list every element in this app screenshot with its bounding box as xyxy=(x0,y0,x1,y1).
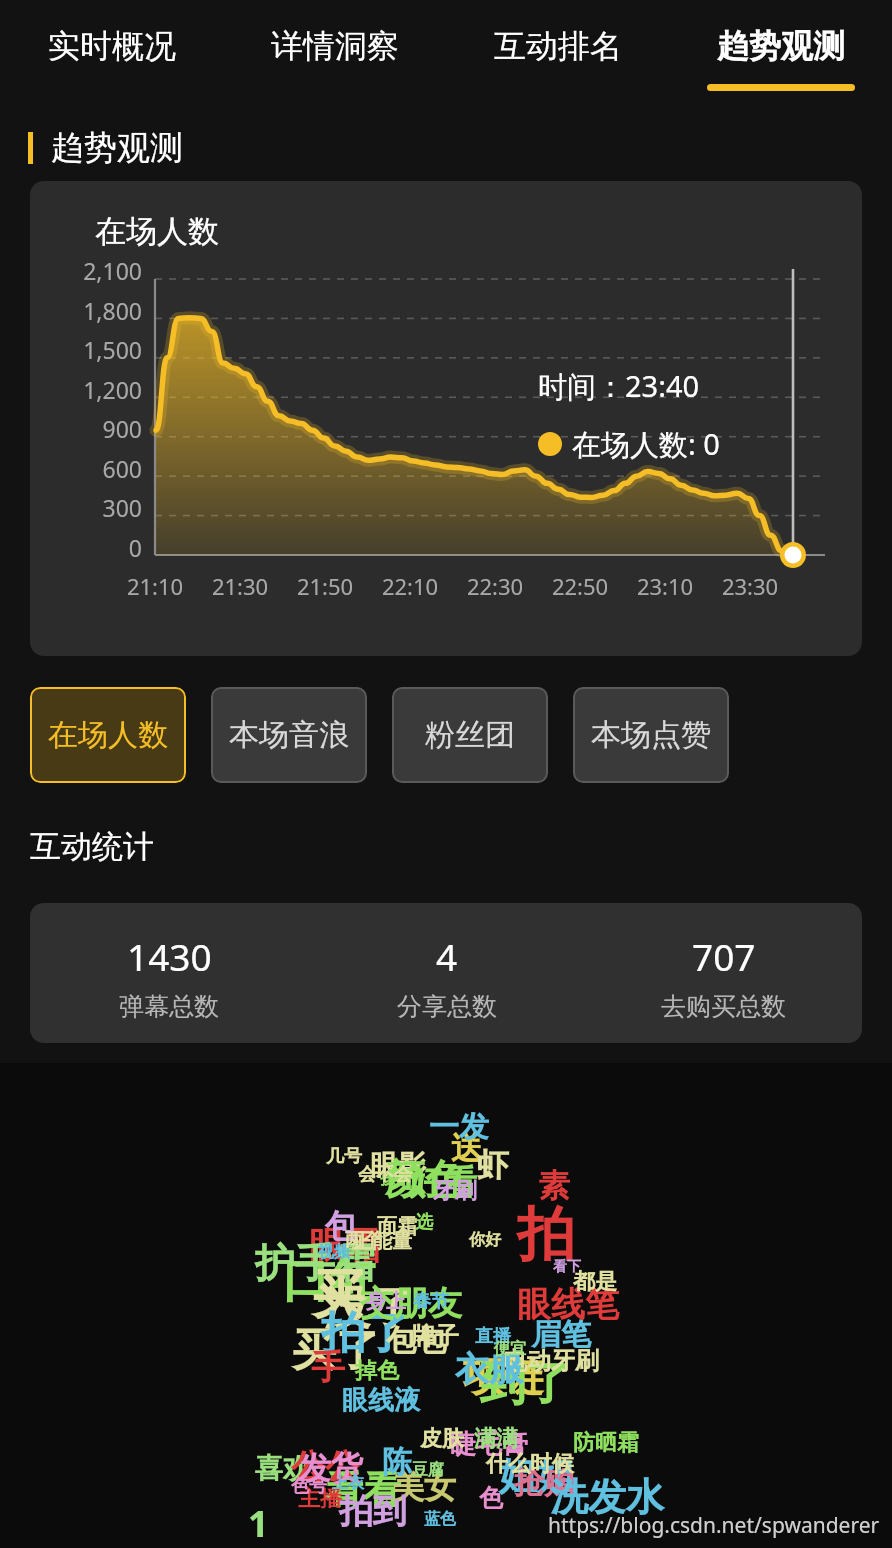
button[interactable]: 本场音浪 xyxy=(211,687,367,783)
staticText: 会不会 xyxy=(358,1163,412,1186)
staticText: 美女 xyxy=(392,1467,456,1507)
staticText: 看下 xyxy=(553,1258,581,1276)
staticText: 素 xyxy=(538,1166,570,1206)
staticText: 口红 xyxy=(282,1251,378,1311)
staticText: 时间：23:40 xyxy=(538,366,700,406)
staticText: 22:30 xyxy=(463,571,527,601)
staticText: 弹幕总数 xyxy=(119,991,219,1022)
staticText: 都是 xyxy=(573,1268,617,1296)
staticText: 在场人数: 0 xyxy=(572,424,720,464)
staticText: 详情洞察 xyxy=(271,26,399,66)
staticText: 1,200 xyxy=(30,374,142,405)
staticText: 趋势观测 xyxy=(51,127,183,169)
staticText: 分享总数 xyxy=(397,991,497,1022)
staticText: 喜欢 xyxy=(255,1451,311,1486)
staticText: 到了 xyxy=(480,1355,572,1413)
staticText: 眉笔 xyxy=(531,1316,591,1354)
staticText: 去购买总数 xyxy=(661,991,786,1022)
button[interactable]: 4 xyxy=(308,931,585,1022)
button[interactable]: 1430 xyxy=(30,931,308,1022)
staticText: 手 xyxy=(311,1346,345,1389)
button[interactable]: 详情洞察 xyxy=(223,0,446,115)
staticText: 几号 xyxy=(326,1145,362,1168)
staticText: 发货 xyxy=(299,1448,363,1488)
staticText: 眼线液 xyxy=(342,1384,420,1417)
staticText: 直播 xyxy=(475,1325,511,1348)
staticText: 粉丝团 xyxy=(425,716,515,754)
staticText: 色号 xyxy=(291,1475,327,1498)
staticText: 1 xyxy=(248,1499,269,1548)
staticText: 什么时候 xyxy=(486,1450,574,1478)
staticText: 1,800 xyxy=(30,295,142,326)
staticText: 面霜 xyxy=(377,1214,417,1239)
staticText: 掉色 xyxy=(355,1357,399,1385)
staticText: 你好 xyxy=(469,1230,501,1250)
staticText: 护手霜 xyxy=(255,1238,375,1288)
staticText: 21:50 xyxy=(293,571,357,601)
staticText: 电动牙刷 xyxy=(503,1346,599,1376)
staticText: https://blog.csdn.net/spwanderer xyxy=(548,1511,880,1540)
staticText: 抢购 xyxy=(514,1464,574,1502)
staticText: 拍了 xyxy=(321,1306,409,1361)
staticText: 便宜 xyxy=(494,1339,526,1359)
staticText: 虾 xyxy=(477,1145,509,1185)
staticText: 孩子 xyxy=(380,1169,412,1189)
staticText: 互动统计 xyxy=(30,827,154,866)
staticText: 拍 xyxy=(517,1198,575,1271)
staticText: 趋势观测 xyxy=(717,26,845,66)
staticText: 包包 xyxy=(386,1322,446,1360)
staticText: 包 xyxy=(325,1206,357,1246)
staticText: 满满 xyxy=(474,1425,518,1453)
staticText: 实时概况 xyxy=(48,26,176,66)
staticText: 23:10 xyxy=(633,571,697,601)
button[interactable]: 本场点赞 xyxy=(573,687,729,783)
staticText: 视频 xyxy=(318,1242,350,1262)
staticText: 色 xyxy=(479,1483,503,1513)
staticText: 2,100 xyxy=(30,255,142,286)
staticText: 600 xyxy=(30,453,142,484)
staticText: 在场人数 xyxy=(95,212,219,251)
staticText: 看看 xyxy=(325,1466,401,1514)
staticText: 22:50 xyxy=(548,571,612,601)
staticText: 交朋友 xyxy=(360,1282,462,1325)
staticText: 送 xyxy=(451,1128,483,1168)
button[interactable]: 在场人数 xyxy=(30,687,186,783)
button[interactable]: 互动排名 xyxy=(446,0,669,115)
staticText: 春节 xyxy=(413,1290,449,1313)
staticText: 皮肤 xyxy=(420,1425,464,1453)
staticText: 1430 xyxy=(127,931,212,981)
staticText: 两个 xyxy=(345,1229,381,1252)
staticText: 颜色 xyxy=(385,1154,465,1204)
staticText: 防晒霜 xyxy=(573,1429,639,1457)
staticText: 好看 xyxy=(409,1161,477,1204)
staticText: 互动排名 xyxy=(494,26,622,66)
staticText: 22:10 xyxy=(378,571,442,601)
staticText: 选 xyxy=(415,1211,433,1234)
staticText: 蓝色 xyxy=(424,1509,456,1529)
staticText: 没了 xyxy=(324,1280,416,1338)
staticText: 项链 xyxy=(463,1351,543,1401)
staticText: 陈 xyxy=(382,1443,412,1481)
staticText: 900 xyxy=(30,413,142,444)
staticText: 牌子 xyxy=(411,1321,459,1351)
button[interactable]: 趋势观测 xyxy=(669,0,892,115)
staticText: 一发 xyxy=(429,1108,489,1146)
staticText: 买 xyxy=(312,1262,364,1328)
staticText: 眼霜 xyxy=(309,1223,381,1268)
staticText: 本场音浪 xyxy=(229,716,349,754)
button[interactable]: 粉丝团 xyxy=(392,687,548,783)
staticText: 牙刷 xyxy=(433,1177,477,1205)
button[interactable]: 707 xyxy=(585,931,862,1022)
staticText: 主播 xyxy=(298,1485,342,1513)
staticText: 707 xyxy=(692,931,756,981)
staticText: 身上 xyxy=(366,1289,406,1314)
staticText: 300 xyxy=(30,492,142,523)
staticText: 豆腐 xyxy=(412,1460,444,1480)
staticText: 23:30 xyxy=(718,571,782,601)
staticText: 上衣 xyxy=(332,1473,364,1493)
staticText: 拍到 xyxy=(339,1490,407,1533)
staticText: 在场人数 xyxy=(48,716,168,754)
button[interactable]: 实时概况 xyxy=(0,0,223,115)
staticText: 睫毛膏 xyxy=(450,1428,528,1461)
staticText: 衣服 xyxy=(455,1348,523,1391)
